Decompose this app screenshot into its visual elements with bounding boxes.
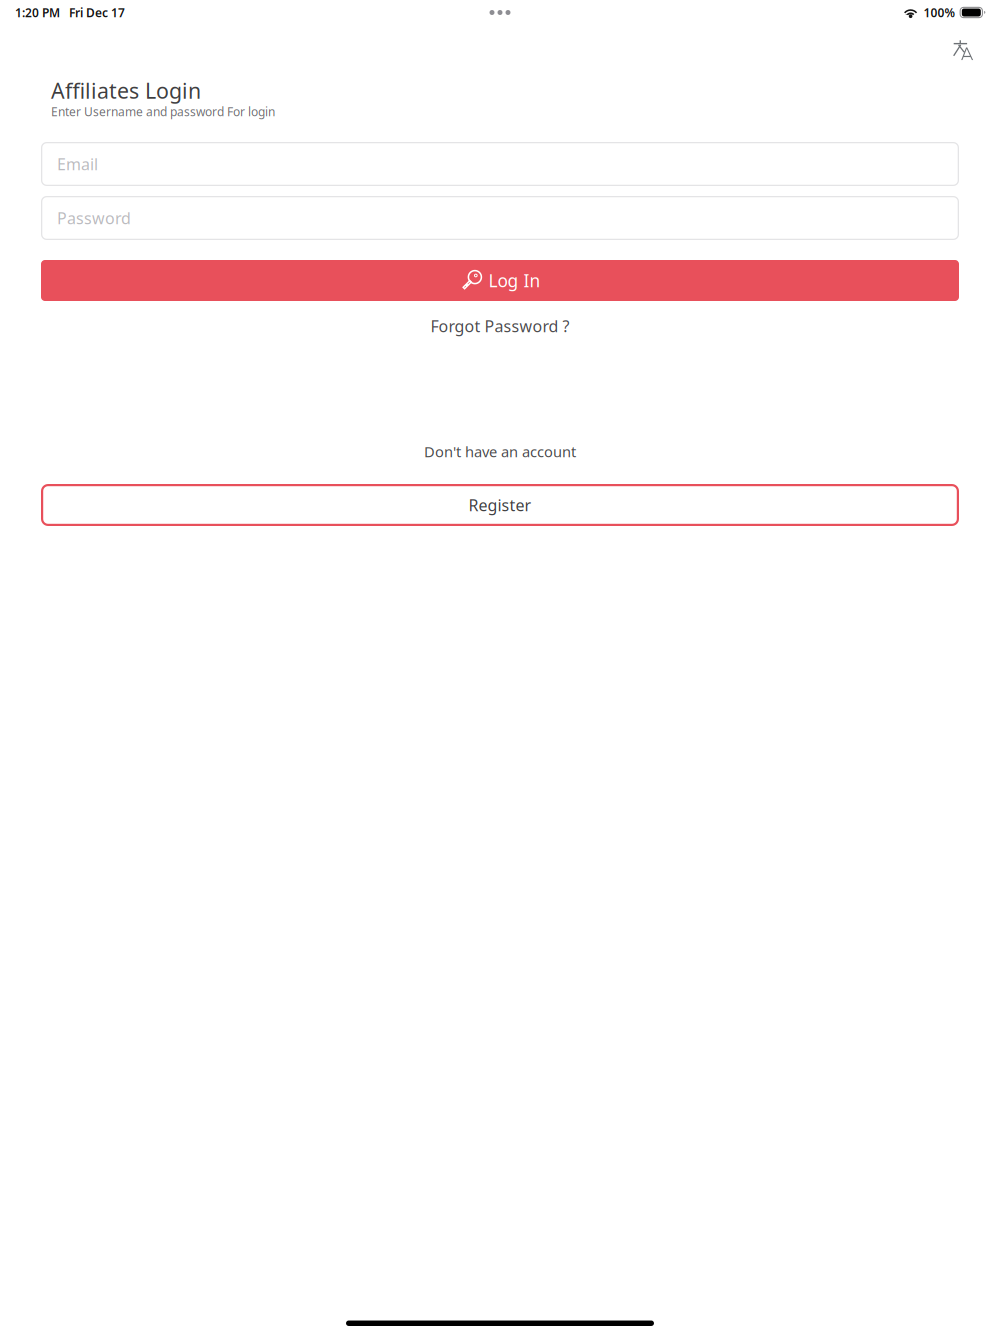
button[interactable]: Forgot Password ?: [430, 313, 569, 339]
button[interactable]: Translate: [949, 36, 980, 65]
button[interactable]: Email: [41, 142, 959, 186]
staticText: Affiliates Login: [51, 76, 201, 105]
button[interactable]: Register: [41, 484, 959, 526]
staticText: Fri Dec 17: [69, 4, 125, 20]
button[interactable]: Log In: [41, 260, 959, 301]
staticText: Forgot Password ?: [430, 315, 569, 337]
staticText: Password: [57, 207, 131, 229]
staticText: Don't have an account: [424, 442, 576, 461]
staticText: Enter Username and password For login: [51, 103, 275, 119]
staticText: Log In: [488, 269, 540, 292]
staticText: Email: [57, 153, 98, 175]
staticText: 1:20 PM: [15, 4, 60, 20]
button[interactable]: Password: [41, 196, 959, 240]
staticText: Register: [468, 494, 531, 516]
staticText: 100%: [924, 4, 956, 20]
